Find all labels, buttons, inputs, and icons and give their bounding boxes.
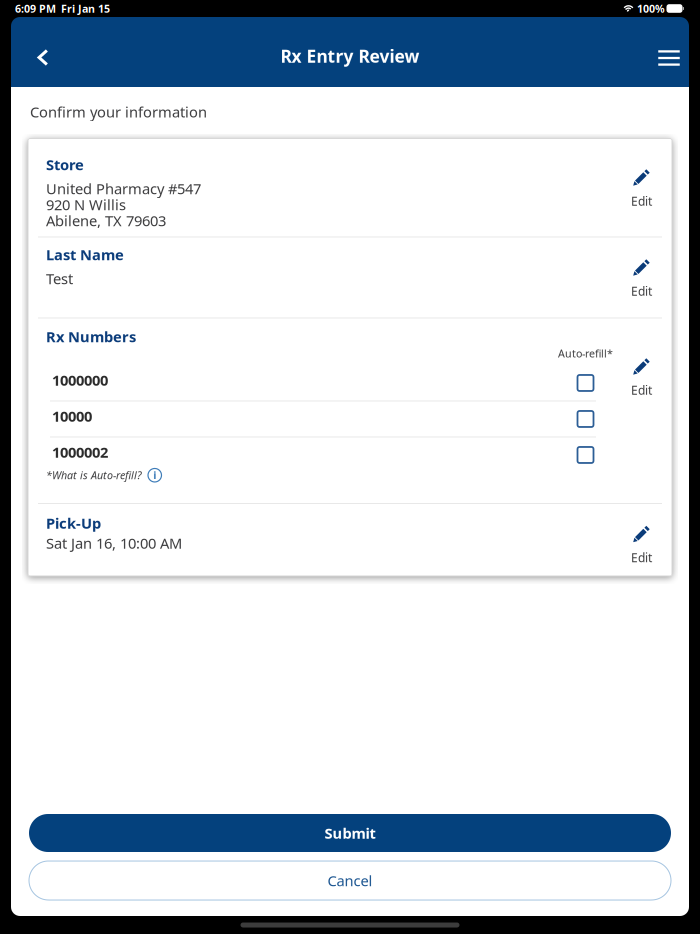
button[interactable]: Edit	[611, 357, 672, 395]
staticText: Edit	[631, 193, 652, 209]
staticText: United Pharmacy #547	[46, 179, 201, 198]
staticText: Edit	[631, 382, 652, 398]
button[interactable]: Cancel	[29, 861, 671, 900]
button[interactable]: Back	[20, 33, 66, 81]
staticText: Edit	[631, 550, 652, 566]
staticText: 1000002	[52, 442, 108, 462]
button[interactable]: Edit	[611, 525, 672, 562]
staticText: Fri Jan 15	[61, 1, 110, 16]
staticText: i	[153, 468, 156, 482]
staticText: Sat Jan 16, 10:00 AM	[46, 533, 182, 553]
button[interactable]: Edit	[611, 258, 672, 296]
staticText: 100%	[637, 1, 665, 16]
staticText: Pick-Up	[46, 513, 101, 533]
staticText: Abilene, TX 79603	[46, 211, 166, 230]
staticText: Last Name	[46, 245, 124, 264]
button[interactable]: Submit	[29, 814, 671, 852]
staticText: 920 N Willis	[46, 195, 126, 214]
button[interactable]: Auto-refill	[577, 411, 593, 427]
button[interactable]: Auto-refill	[577, 447, 593, 463]
button[interactable]: Menu	[646, 33, 692, 81]
staticText: Submit	[324, 823, 375, 843]
staticText: Rx Entry Review	[280, 44, 419, 67]
staticText: Edit	[631, 283, 652, 299]
button[interactable]: Edit	[611, 168, 672, 206]
staticText: 6:09 PM	[15, 1, 56, 16]
button[interactable]: Auto-refill	[577, 375, 593, 391]
staticText: *What is Auto-refill?	[46, 468, 142, 482]
staticText: Store	[46, 155, 84, 174]
staticText: Rx Numbers	[46, 327, 136, 346]
staticText: Test	[46, 269, 73, 288]
staticText: Confirm your information	[30, 102, 207, 121]
staticText: 10000	[52, 406, 92, 426]
staticText: Auto-refill*	[558, 346, 613, 361]
staticText: Cancel	[327, 871, 372, 890]
staticText: 1000000	[52, 370, 108, 390]
